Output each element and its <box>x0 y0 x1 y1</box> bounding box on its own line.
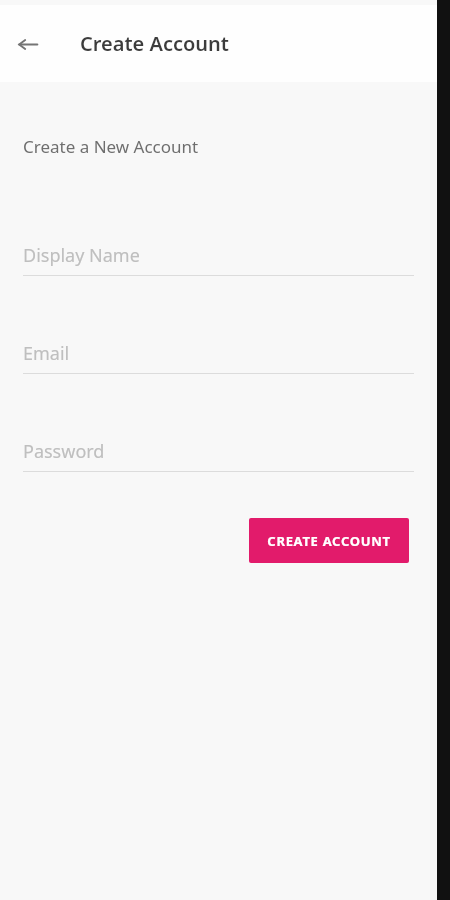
staticText: Create a New Account <box>23 135 199 158</box>
button[interactable]: Display Name <box>23 243 414 276</box>
staticText: Password <box>23 439 105 464</box>
staticText: Create Account <box>80 30 229 57</box>
button[interactable]: Back <box>11 27 45 61</box>
button[interactable]: CREATE ACCOUNT <box>249 518 409 563</box>
button[interactable]: Password <box>23 439 414 472</box>
staticText: CREATE ACCOUNT <box>267 532 391 550</box>
button[interactable]: Email <box>23 341 414 374</box>
staticText: Display Name <box>23 243 140 268</box>
staticText: Email <box>23 341 70 366</box>
